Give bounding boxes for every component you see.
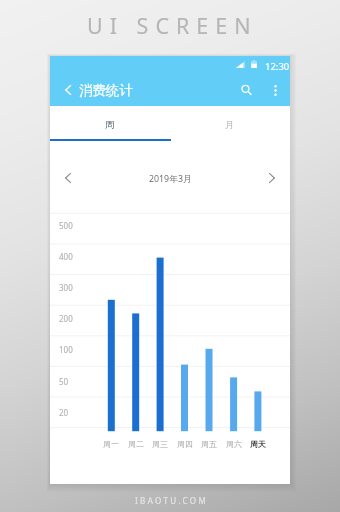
button[interactable]: 周 [50,106,170,141]
staticText: UI SCREEN [87,11,258,40]
staticText: 100 [59,344,73,355]
staticText: IBAOTU.COM [135,495,209,506]
staticText: 400 [59,251,73,262]
button[interactable]: Previous month [57,167,79,189]
button[interactable]: Next month [261,167,283,189]
staticText: 2019年3月 [149,173,192,185]
staticText: 200 [59,313,73,324]
staticText: 周一 [103,439,119,449]
button[interactable]: Search [235,79,257,101]
staticText: 周天 [250,439,266,449]
staticText: 周三 [152,439,168,449]
button[interactable]: 月 [170,106,290,141]
staticText: 周四 [177,439,193,449]
staticText: 周二 [128,439,144,449]
button[interactable]: More options [264,79,286,101]
staticText: 周五 [201,439,217,449]
staticText: 周 [105,119,115,131]
button[interactable]: Back [56,78,80,102]
staticText: 月 [225,119,235,131]
staticText: 500 [59,220,73,231]
staticText: 消费统计 [79,82,133,99]
staticText: 周六 [226,439,242,449]
staticText: 50 [59,376,69,387]
staticText: 20 [59,407,69,418]
staticText: 300 [59,282,73,293]
staticText: 12:30 [265,60,290,73]
